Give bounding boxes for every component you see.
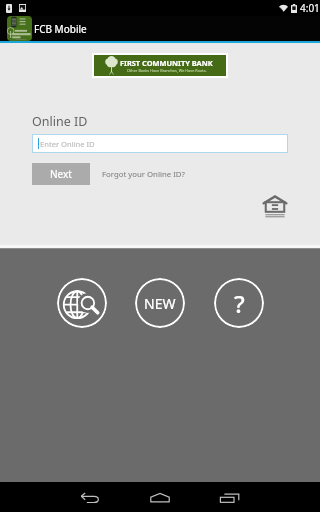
- staticText: Other Banks Have Branches, We Have Roots…: [127, 68, 207, 73]
- button[interactable]: App icon: [7, 16, 32, 41]
- button[interactable]: New user: [135, 278, 185, 328]
- staticText: 4:01: [300, 1, 320, 15]
- button[interactable]: Enter Online ID: [32, 134, 288, 153]
- staticText: FCB Mobile: [34, 22, 87, 36]
- staticText: Forgot your Online ID?: [102, 169, 185, 180]
- button[interactable]: Recent apps: [202, 483, 258, 512]
- staticText: Online ID: [32, 113, 88, 130]
- button[interactable]: Back: [62, 483, 118, 512]
- staticText: Next: [50, 167, 72, 181]
- button[interactable]: Next: [32, 163, 90, 185]
- button[interactable]: Find locations: [57, 278, 107, 328]
- staticText: FIRST COMMUNITY BANK: [120, 58, 213, 68]
- button[interactable]: Forgot your Online ID?: [102, 165, 185, 183]
- button[interactable]: Home: [132, 483, 188, 512]
- staticText: Enter Online ID: [40, 139, 95, 149]
- staticText: NEW: [144, 294, 176, 313]
- staticText: ?: [234, 287, 245, 320]
- button[interactable]: Help: [214, 278, 264, 328]
